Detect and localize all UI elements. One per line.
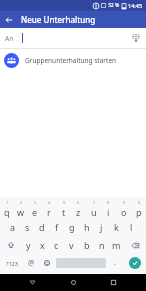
staticText: s — [25, 221, 30, 233]
staticText: l — [130, 221, 133, 233]
button[interactable]: a — [6, 218, 20, 236]
staticText: t — [62, 206, 66, 218]
staticText: x — [40, 239, 45, 251]
button[interactable]: Kontakte — [126, 28, 146, 48]
staticText: 0 — [138, 200, 141, 205]
staticText: 8 — [107, 200, 110, 205]
button[interactable]: @ — [23, 254, 39, 272]
button[interactable]: 0 — [131, 199, 146, 218]
staticText: 1 — [6, 200, 9, 205]
staticText: Gruppenunterhaltung starten — [25, 56, 117, 65]
button[interactable]: 1 — [0, 199, 14, 218]
button[interactable] — [22, 28, 126, 48]
staticText: f — [55, 221, 59, 233]
staticText: e — [32, 206, 38, 218]
staticText: w — [17, 206, 25, 218]
staticText: v — [69, 239, 74, 251]
button[interactable]: g — [64, 218, 79, 236]
staticText: 4 — [48, 200, 51, 205]
staticText: m — [112, 239, 121, 251]
staticText: u — [91, 206, 97, 218]
button[interactable]: Zurück — [0, 11, 17, 28]
button[interactable]: 2 — [14, 199, 28, 218]
staticText: 3 — [34, 200, 37, 205]
staticText: 14:45 — [128, 2, 143, 9]
button[interactable]: h — [79, 218, 94, 236]
button[interactable]: k — [109, 218, 124, 236]
button[interactable]: Übersicht — [105, 274, 122, 291]
staticText: 6 — [77, 200, 80, 205]
button[interactable]: Senden — [123, 254, 146, 272]
staticText: Neue Unterhaltung — [21, 14, 96, 25]
button[interactable]: ?123 — [0, 254, 23, 272]
staticText: q — [4, 206, 10, 218]
button[interactable]: 8 — [101, 199, 116, 218]
button[interactable]: 5 — [56, 199, 71, 218]
staticText: n — [99, 239, 105, 251]
button[interactable]: Umschalttaste — [0, 236, 21, 254]
staticText: b — [84, 239, 90, 251]
button[interactable]: Gruppenunterhaltung starten — [0, 49, 146, 72]
staticText: k — [114, 221, 119, 233]
button[interactable]: 3 — [28, 199, 42, 218]
button[interactable]: 4 — [42, 199, 56, 218]
staticText: c — [54, 239, 59, 251]
button[interactable]: j — [94, 218, 109, 236]
staticText: 9 — [123, 200, 126, 205]
staticText: 7 — [93, 200, 96, 205]
staticText: 5 — [63, 200, 66, 205]
button[interactable]: 6 — [71, 199, 86, 218]
staticText: o — [121, 206, 127, 218]
button[interactable]: Löschen — [124, 236, 146, 254]
staticText: h — [84, 221, 90, 233]
button[interactable]: s — [20, 218, 34, 236]
staticText: d — [39, 221, 45, 233]
staticText: p — [136, 206, 142, 218]
staticText: An — [5, 34, 14, 43]
button[interactable]: l — [124, 218, 139, 236]
staticText: 2 — [20, 200, 23, 205]
button[interactable]: Startbildschirm — [65, 274, 82, 291]
button[interactable]: f — [49, 218, 64, 236]
staticText: a — [10, 221, 16, 233]
staticText: i — [107, 206, 110, 218]
button[interactable]: x — [35, 236, 49, 254]
button[interactable]: d — [34, 218, 49, 236]
button[interactable]: Emoji — [39, 254, 55, 272]
staticText: 32 % — [108, 2, 120, 9]
button[interactable]: . — [107, 254, 123, 272]
button[interactable]: n — [94, 236, 109, 254]
staticText: @ — [28, 258, 35, 268]
staticText: r — [47, 206, 51, 218]
button[interactable]: v — [64, 236, 79, 254]
staticText: . — [114, 258, 116, 268]
button[interactable]: 9 — [116, 199, 131, 218]
staticText: g — [69, 221, 75, 233]
staticText: y — [26, 239, 31, 251]
staticText: ?123 — [6, 260, 18, 267]
button[interactable]: 7 — [86, 199, 101, 218]
button[interactable]: Zurück — [24, 274, 41, 291]
staticText: z — [76, 206, 81, 218]
button[interactable]: m — [109, 236, 124, 254]
staticText: j — [100, 221, 103, 233]
button[interactable]: y — [21, 236, 35, 254]
button[interactable]: b — [79, 236, 94, 254]
button[interactable]: c — [49, 236, 64, 254]
